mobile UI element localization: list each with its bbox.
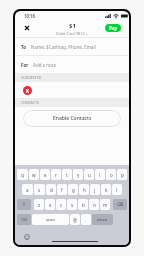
button[interactable]: Emoji — [24, 234, 30, 240]
staticText: 10:16 — [24, 13, 36, 19]
staticText: K — [26, 88, 29, 94]
staticText: a — [26, 187, 29, 193]
staticText: ⌫ — [117, 202, 124, 207]
staticText: g — [72, 187, 75, 193]
button[interactable]: n — [89, 199, 99, 210]
button[interactable]: j — [90, 184, 100, 195]
button[interactable]: d — [46, 184, 56, 195]
button[interactable]: m — [100, 199, 110, 210]
staticText: w — [32, 172, 36, 178]
staticText: n — [93, 202, 96, 208]
button[interactable]: t — [62, 169, 72, 180]
staticText: @ — [73, 217, 78, 223]
button[interactable]: a — [22, 184, 33, 195]
staticText: space — [46, 217, 56, 222]
staticText: return — [97, 217, 108, 222]
staticText: Add a note — [33, 62, 56, 68]
button[interactable]: h — [79, 184, 89, 195]
button[interactable]: x — [45, 199, 55, 210]
staticText: u — [88, 172, 91, 178]
staticText: v — [71, 202, 74, 208]
button[interactable]: z — [34, 199, 44, 210]
button[interactable]: ⇧ — [17, 199, 31, 210]
button[interactable]: Pay — [105, 24, 121, 32]
button[interactable]: k — [101, 184, 111, 195]
staticText: To — [21, 44, 27, 50]
staticText: Enable Contacts — [53, 115, 92, 122]
staticText: CONTACTS — [21, 100, 39, 105]
button[interactable]: g — [68, 184, 78, 195]
staticText: i — [99, 172, 101, 178]
staticText: Pay — [109, 25, 118, 31]
staticText: x — [49, 202, 52, 208]
staticText: d — [50, 187, 53, 193]
button[interactable]: u — [84, 169, 94, 180]
button[interactable]: s — [34, 184, 45, 195]
staticText: r — [55, 172, 57, 178]
button[interactable]: e — [40, 169, 50, 180]
button[interactable]: @ — [70, 214, 80, 225]
staticText: s — [38, 187, 41, 193]
staticText: k — [105, 187, 108, 193]
staticText: SUGGESTED — [21, 75, 42, 80]
staticText: f — [61, 187, 63, 193]
button[interactable]: b — [78, 199, 88, 210]
staticText: j — [94, 187, 96, 193]
button[interactable]: w — [29, 169, 39, 180]
staticText: 123 — [21, 217, 27, 222]
button[interactable]: p — [117, 169, 127, 180]
button[interactable]: Close — [20, 21, 33, 34]
staticText: l — [116, 187, 118, 193]
staticText: . — [85, 217, 87, 223]
staticText: h — [83, 187, 86, 193]
button[interactable]: For — [15, 56, 129, 73]
button[interactable]: $1 — [69, 22, 76, 30]
button[interactable]: o — [106, 169, 116, 180]
staticText: m — [103, 202, 108, 208]
staticText: y — [77, 172, 80, 178]
button[interactable]: To — [15, 38, 129, 55]
button[interactable]: i — [95, 169, 105, 180]
button[interactable]: ⌫ — [113, 199, 127, 210]
staticText: e — [44, 172, 47, 178]
button[interactable]: 123 — [17, 214, 31, 225]
staticText: c — [60, 202, 63, 208]
button[interactable]: q — [17, 169, 28, 180]
button[interactable]: f — [57, 184, 67, 195]
staticText: Debit Card 9812 ⌄ — [56, 31, 89, 36]
staticText: For — [21, 62, 29, 68]
staticText: t — [66, 172, 68, 178]
button[interactable]: v — [67, 199, 77, 210]
button[interactable]: . — [81, 214, 91, 225]
staticText: Name, $Cashtag, Phone, Email — [31, 44, 96, 50]
staticText: o — [110, 172, 113, 178]
button[interactable]: Enable Contacts — [23, 110, 121, 127]
button[interactable]: K — [23, 86, 32, 95]
staticText: ⇧ — [22, 202, 26, 207]
button[interactable]: space — [32, 214, 69, 225]
button[interactable]: c — [56, 199, 66, 210]
button[interactable]: return — [92, 214, 113, 225]
button[interactable]: y — [73, 169, 83, 180]
staticText: b — [82, 202, 85, 208]
staticText: z — [38, 202, 41, 208]
button[interactable]: l — [112, 184, 122, 195]
staticText: q — [21, 172, 24, 178]
button[interactable]: r — [51, 169, 61, 180]
staticText: p — [121, 172, 124, 178]
